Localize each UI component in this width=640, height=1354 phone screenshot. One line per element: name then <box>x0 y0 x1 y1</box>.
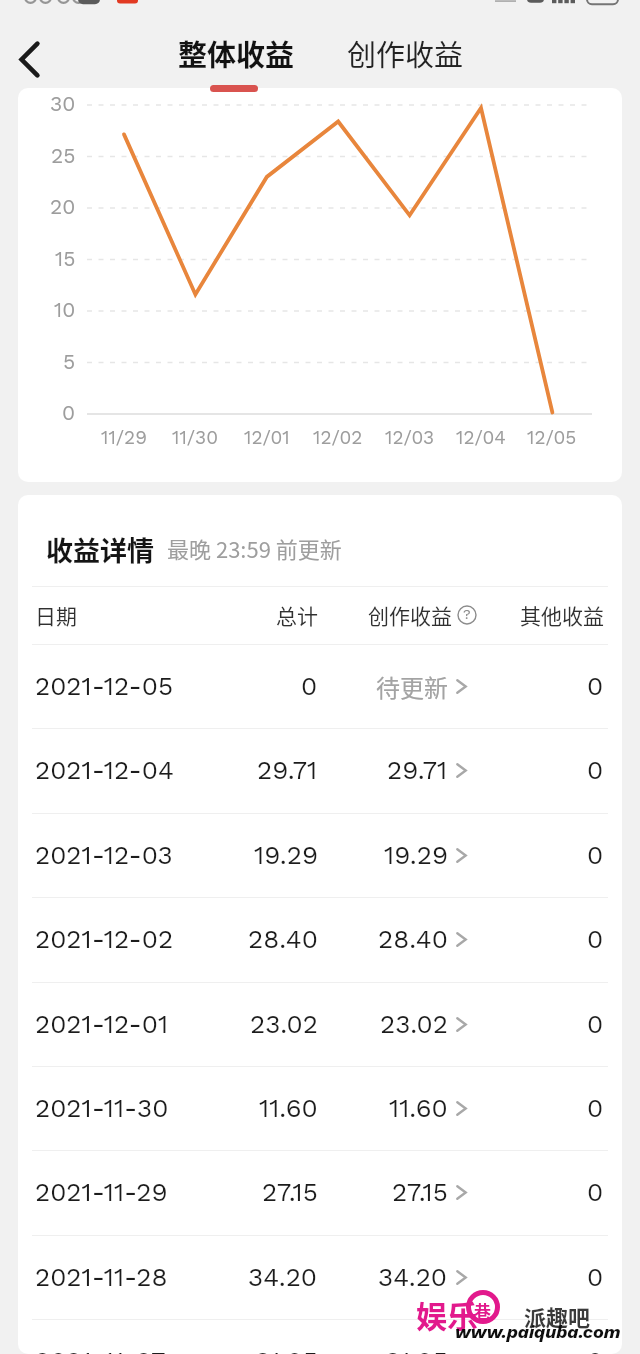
staticText: 2021-12-01 <box>35 1009 169 1039</box>
button[interactable]: 2021-11-27 <box>18 1319 622 1354</box>
staticText: 12/01 <box>244 426 290 448</box>
staticText: 巷 <box>474 1298 491 1323</box>
staticText: 11.60 <box>389 1093 448 1123</box>
staticText: 12/03 <box>385 426 435 448</box>
staticText: 28.40 <box>248 924 318 954</box>
staticText: www.paiquba.com <box>455 1321 621 1342</box>
staticText: 12/02 <box>313 426 363 448</box>
staticText: 11.60 <box>259 1093 318 1123</box>
staticText: 10 <box>54 297 76 322</box>
staticText: 娱乐 <box>416 1292 478 1337</box>
staticText: 2021-12-02 <box>35 924 174 954</box>
staticText: 0 <box>587 1009 604 1039</box>
staticText: 0 <box>587 840 604 870</box>
staticText: 2021-11-27 <box>35 1346 166 1354</box>
staticText: 日期 <box>35 600 77 630</box>
staticText: 15 <box>55 246 76 271</box>
staticText: 23.02 <box>250 1009 318 1039</box>
staticText: 整体收益 <box>178 32 295 74</box>
staticText: ? <box>463 606 471 622</box>
button[interactable]: Back <box>3 33 55 85</box>
staticText: 2021-12-03 <box>35 840 173 870</box>
staticText: 23.02 <box>380 1009 448 1039</box>
staticText: 34.20 <box>248 1262 318 1292</box>
staticText: 创作收益 <box>347 32 464 74</box>
staticText: 0 <box>587 755 604 785</box>
staticText: 11/29 <box>101 426 147 448</box>
staticText: 28.40 <box>378 924 448 954</box>
staticText: 最晚 23:59 前更新 <box>167 532 342 564</box>
staticText: 0 <box>587 671 604 701</box>
staticText: 31.05 <box>385 1346 448 1354</box>
staticText: 总计 <box>276 600 318 630</box>
button[interactable]: 2021-12-03 <box>18 813 622 897</box>
staticText: 34.20 <box>378 1262 448 1292</box>
staticText: 2021-12-05 <box>35 671 174 701</box>
staticText: 派趣吧 <box>524 1300 591 1332</box>
staticText: 12/05 <box>527 426 577 448</box>
button[interactable]: 2021-11-30 <box>18 1066 622 1150</box>
staticText: 0 <box>62 400 76 425</box>
button[interactable]: 2021-12-01 <box>18 982 622 1066</box>
staticText: 19.29 <box>254 840 318 870</box>
staticText: 0 <box>587 1346 604 1354</box>
staticText: 收益详情 <box>46 530 154 569</box>
staticText: 2021-11-29 <box>35 1177 168 1207</box>
staticText: 其他收益 <box>520 600 604 630</box>
button[interactable]: 2021-11-28 <box>18 1235 622 1319</box>
staticText: 27.15 <box>392 1177 448 1207</box>
staticText: 0 <box>587 1177 604 1207</box>
staticText: 待更新 <box>376 669 448 704</box>
staticText: 11/30 <box>172 426 219 448</box>
staticText: 0 <box>587 1093 604 1123</box>
staticText: 2021-11-28 <box>35 1262 168 1292</box>
button[interactable]: 2021-11-29 <box>18 1150 622 1234</box>
staticText: 5 <box>63 349 76 374</box>
button[interactable]: 创作收益 <box>341 26 469 80</box>
staticText: 0 <box>587 1262 604 1292</box>
button[interactable]: 2021-12-05 <box>18 644 622 728</box>
staticText: 20 <box>50 194 76 219</box>
staticText: 19.29 <box>384 840 448 870</box>
button[interactable]: 2021-12-04 <box>18 728 622 812</box>
staticText: 31.05 <box>255 1346 318 1354</box>
staticText: 30 <box>50 91 76 116</box>
staticText: 2021-12-04 <box>35 755 174 785</box>
staticText: 0 <box>301 671 318 701</box>
button[interactable]: 整体收益 <box>172 26 300 80</box>
staticText: 27.15 <box>262 1177 318 1207</box>
staticText: 2021-11-30 <box>35 1093 169 1123</box>
staticText: 创作收益 <box>368 600 452 630</box>
staticText: 0 <box>587 924 604 954</box>
button[interactable]: 2021-12-02 <box>18 897 622 981</box>
staticText: 29.71 <box>257 755 318 785</box>
staticText: 25 <box>51 143 76 168</box>
staticText: 12/04 <box>456 426 506 448</box>
staticText: 29.71 <box>387 755 448 785</box>
